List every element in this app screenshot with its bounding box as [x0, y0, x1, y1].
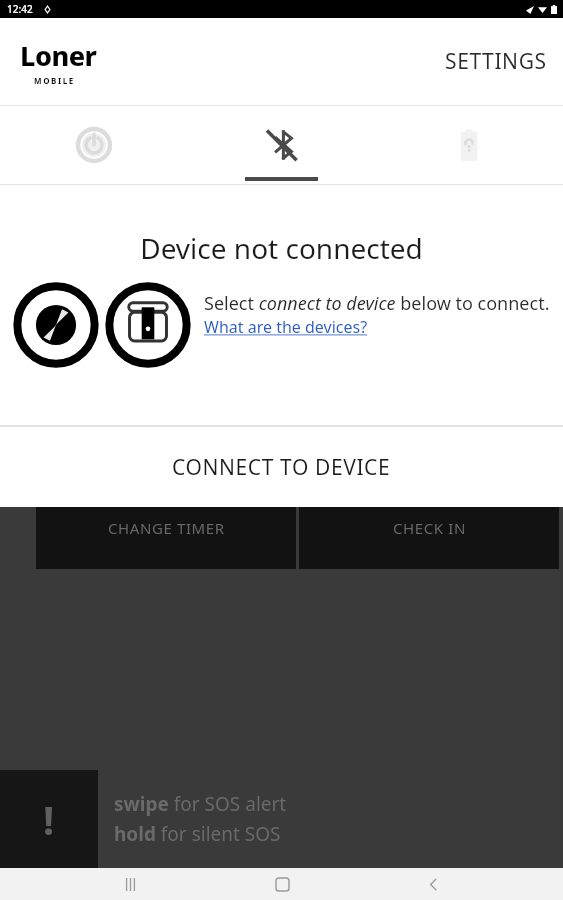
button[interactable]: CHANGE TIMER	[36, 507, 296, 569]
button[interactable]: !	[0, 770, 563, 868]
staticText: hold for silent SOS	[114, 821, 281, 847]
staticText: CHECK IN	[393, 518, 466, 538]
staticText: Device not connected	[0, 229, 563, 267]
button[interactable]: Home	[260, 868, 304, 900]
staticText: !	[43, 792, 55, 846]
button[interactable]: Recents	[108, 868, 152, 900]
staticText: What are the devices?	[204, 316, 368, 338]
button[interactable]: Back	[411, 868, 455, 900]
button[interactable]: CONNECT TO DEVICE	[0, 427, 563, 507]
staticText: Loner	[20, 37, 97, 74]
staticText: 12:42	[7, 2, 33, 16]
staticText: Select connect to device below to connec…	[204, 291, 550, 316]
button[interactable]: Bluetooth disconnected	[187, 106, 375, 184]
button[interactable]: CHECK IN	[299, 507, 559, 569]
button[interactable]: What are the devices?	[204, 316, 368, 338]
staticText: CHANGE TIMER	[108, 518, 225, 538]
button[interactable]: SETTINGS	[429, 35, 563, 88]
staticText: CONNECT TO DEVICE	[172, 453, 391, 482]
staticText: SETTINGS	[445, 47, 547, 76]
button[interactable]: Power status	[0, 106, 187, 184]
staticText: swipe for SOS alert	[114, 791, 287, 817]
staticText: MOBILE	[34, 75, 75, 86]
